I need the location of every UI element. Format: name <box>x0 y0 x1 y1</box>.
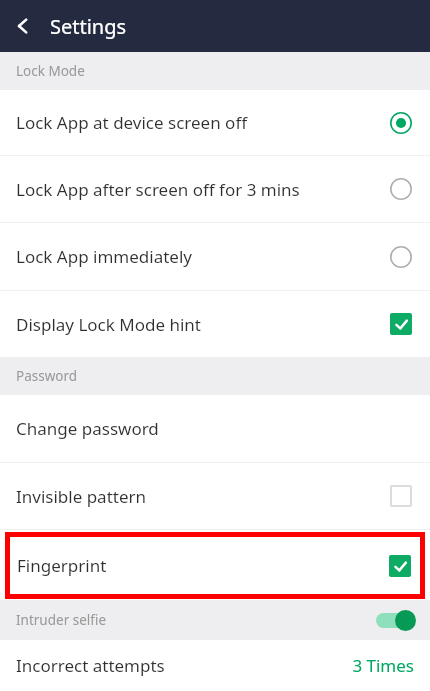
button[interactable]: Invisible pattern <box>0 463 430 529</box>
button[interactable]: Back <box>0 3 46 49</box>
staticText: 3 Times <box>352 654 414 677</box>
staticText: Fingerprint <box>17 554 389 577</box>
staticText: Invisible pattern <box>16 485 390 508</box>
button[interactable]: Change password <box>0 395 430 462</box>
button[interactable]: Lock App immediately <box>0 223 430 290</box>
button[interactable]: Intruder selfie <box>0 600 430 640</box>
button[interactable]: Fingerprint <box>5 532 425 599</box>
button[interactable]: Incorrect attempts <box>0 640 430 691</box>
staticText: Lock Mode <box>16 62 85 80</box>
button[interactable]: Display Lock Mode hint <box>0 291 430 357</box>
staticText: Change password <box>16 417 412 440</box>
button[interactable]: Lock App at device screen off <box>0 90 430 155</box>
staticText: Display Lock Mode hint <box>16 313 390 336</box>
staticText: Lock App after screen off for 3 mins <box>16 178 390 201</box>
button[interactable]: Lock App after screen off for 3 mins <box>0 156 430 222</box>
staticText: Incorrect attempts <box>16 654 352 677</box>
staticText: Password <box>16 367 78 385</box>
staticText: Settings <box>50 13 127 40</box>
staticText: Lock App immediately <box>16 245 390 268</box>
staticText: Intruder selfie <box>16 611 376 629</box>
staticText: Lock App at device screen off <box>16 111 390 134</box>
